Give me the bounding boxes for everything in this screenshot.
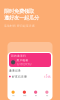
staticText: 好友已注册 [12,75,27,78]
staticText: 我的邀请码 [11,54,26,57]
staticText: 朋友圈 [23,95,26,96]
button[interactable]: 复制 [30,91,41,96]
button[interactable]: 微信 [7,91,19,96]
button[interactable]: 更多 [41,91,52,96]
staticText: 限时免费领取 [4,8,34,15]
staticText: 邀好友一起瓜分 [4,15,39,21]
staticText: ID 8F2K9D [17,62,32,66]
staticText: 邀请记录 [9,69,21,72]
staticText: 用户昵称 [17,59,29,62]
button[interactable]: 朋友圈 [19,91,30,96]
staticText: 微信 [12,95,14,96]
staticText: +5元 [44,75,51,78]
staticText: 活动时间 即日起至月底 [4,24,35,27]
staticText: 复制 [35,95,37,96]
